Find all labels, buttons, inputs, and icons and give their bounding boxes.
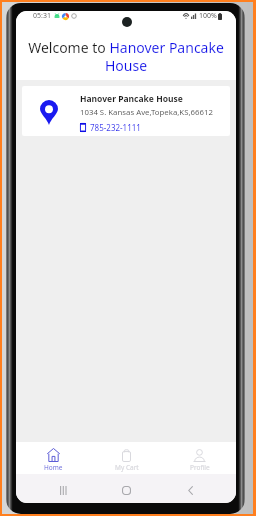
staticText: Welcome to Hanover Pancake House — [23, 38, 229, 75]
button[interactable]: Back — [177, 481, 203, 499]
button[interactable]: Home — [113, 481, 139, 499]
button[interactable]: Home — [16, 442, 90, 474]
staticText: Home — [44, 463, 63, 472]
staticText: 785-232-1111 — [90, 122, 141, 133]
staticText: 1034 S. Kansas Ave,Topeka,KS,66612 — [80, 107, 213, 118]
staticText: 05:31 — [33, 11, 51, 21]
staticText: 100% — [199, 11, 217, 21]
button[interactable]: Hanover Pancake House — [22, 86, 230, 136]
staticText: My Cart — [115, 463, 139, 472]
button[interactable]: Recent apps — [50, 481, 76, 499]
staticText: Profile — [190, 463, 210, 472]
button[interactable]: My Cart — [90, 442, 163, 474]
staticText: Hanover Pancake House — [80, 93, 183, 105]
button[interactable]: Profile — [163, 442, 236, 474]
